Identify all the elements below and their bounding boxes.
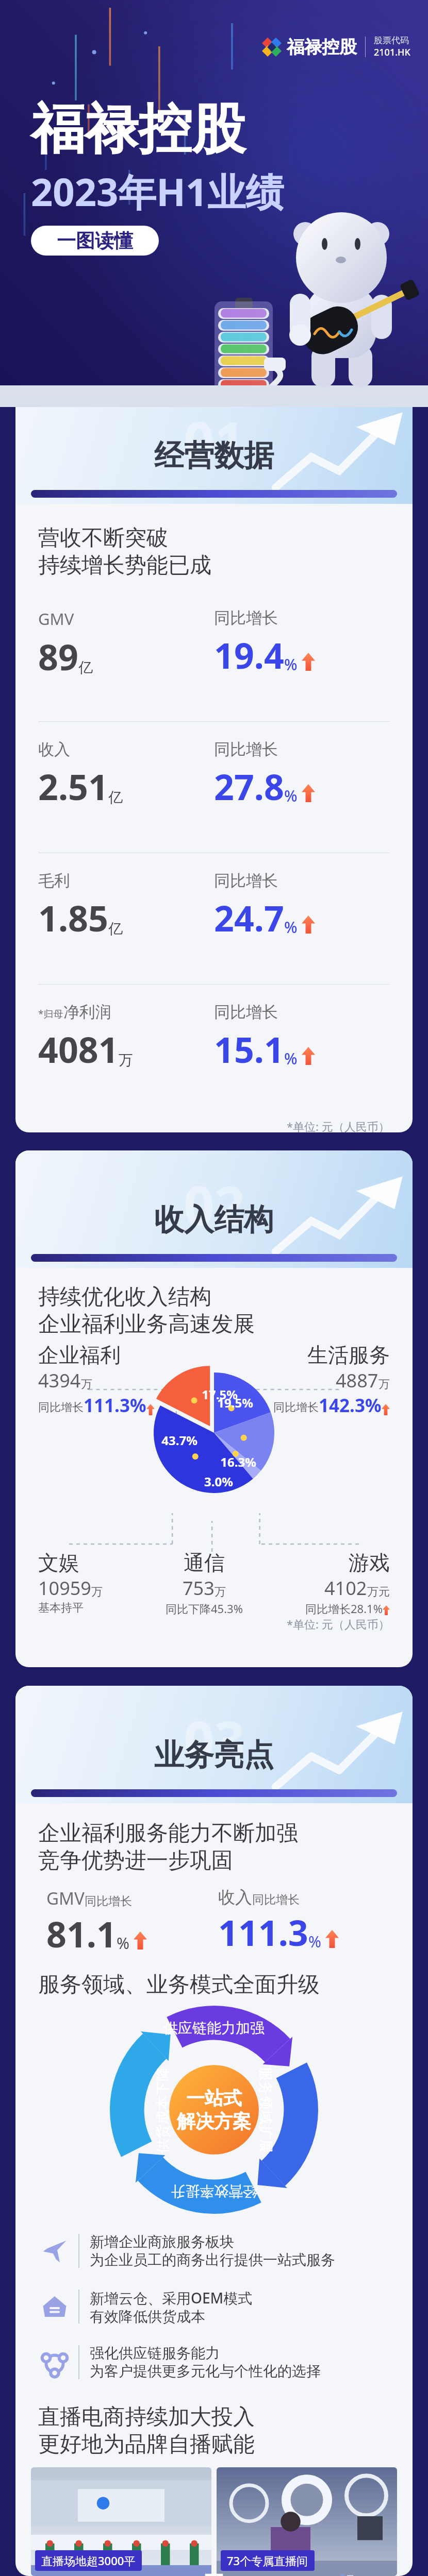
staticText: 万 xyxy=(119,1051,133,1069)
staticText: 经营效率提升 xyxy=(171,2182,257,2200)
staticText: 收入 xyxy=(38,739,70,759)
staticText: 01 xyxy=(184,404,245,477)
staticText: 企业福利服务能力不断加强 xyxy=(38,1820,298,1847)
staticText: 4081 xyxy=(38,1025,119,1073)
staticText: 同比增长 xyxy=(214,871,278,891)
staticText: 生活服务 xyxy=(307,1342,390,1368)
staticText: GMV xyxy=(46,1887,85,1910)
staticText: 2101.HK xyxy=(374,46,410,59)
staticText: 亿 xyxy=(108,788,123,806)
staticText: 新增企业商旅服务板块 xyxy=(90,2233,234,2251)
staticText: 股票代码 xyxy=(374,35,409,46)
staticText: *单位: 元（人民币） xyxy=(287,1616,390,1632)
staticText: 服务领域、业务模式全面升级 xyxy=(38,1971,320,1998)
staticText: 更好地为品牌自播赋能 xyxy=(38,2431,255,2458)
staticText: 通信 xyxy=(184,1550,225,1575)
staticText: 73个专属直播间 xyxy=(227,2553,308,2568)
staticText: 企业福利 xyxy=(38,1342,121,1368)
staticText: 10959 xyxy=(38,1575,91,1601)
staticText: 文娱 xyxy=(38,1550,79,1575)
staticText: 24.7 xyxy=(214,894,284,942)
staticText: 万 xyxy=(378,1377,390,1392)
staticText: 收入 xyxy=(218,1887,252,1908)
button[interactable]: 强化供应链服务能力 xyxy=(38,2334,390,2390)
staticText: 同比增长 xyxy=(85,1894,132,1909)
staticText: GMV xyxy=(38,608,74,630)
staticText: *单位: 元（人民币） xyxy=(287,1118,390,1132)
staticText: 同比下降45.3% xyxy=(166,1601,243,1616)
staticText: 3.0% xyxy=(200,1473,237,1490)
staticText: 竞争优势进一步巩固 xyxy=(38,1847,233,1874)
staticText: % xyxy=(284,654,298,675)
staticText: 03 xyxy=(184,1703,245,1776)
staticText: 89 xyxy=(38,633,78,681)
staticText: 收入结构 xyxy=(154,1201,274,1239)
staticText: 4102 xyxy=(324,1575,367,1601)
staticText: 业务亮点 xyxy=(154,1736,274,1774)
staticText: 福禄控股 xyxy=(287,36,357,58)
staticText: 直播场地超3000平 xyxy=(41,2553,136,2568)
staticText: 4394 xyxy=(38,1368,81,1393)
staticText: 亿 xyxy=(78,658,93,676)
staticText: 同比增长 xyxy=(273,1400,319,1415)
staticText: % xyxy=(117,1933,129,1954)
staticText: 142.3% xyxy=(319,1393,382,1418)
staticText: % xyxy=(284,785,298,806)
staticText: 111.3% xyxy=(84,1393,146,1418)
staticText: 81.1 xyxy=(46,1910,117,1958)
staticText: 为客户提供更多元化与个性化的选择 xyxy=(90,2362,321,2380)
button[interactable]: 73个专属直播间 xyxy=(217,2467,397,2576)
staticText: 持续增长势能已成 xyxy=(38,552,211,579)
staticText: 万 xyxy=(215,1585,226,1599)
staticText: *归母 xyxy=(38,1007,63,1021)
button[interactable]: 一图读懂 xyxy=(31,226,159,256)
staticText: 2.51 xyxy=(38,762,108,810)
staticText: 万 xyxy=(81,1377,92,1392)
staticText: 753 xyxy=(183,1575,215,1601)
staticText: 福禄控股 xyxy=(31,96,245,163)
staticText: 供货成本下降 xyxy=(153,2067,171,2153)
staticText: 万元 xyxy=(367,1585,390,1599)
staticText: 4887 xyxy=(336,1368,378,1393)
staticText: 游戏 xyxy=(349,1550,390,1575)
staticText: 同比增长 xyxy=(214,739,278,759)
staticText: 同比增长 xyxy=(214,608,278,628)
button[interactable]: 直播场地超3000平 xyxy=(31,2467,211,2576)
staticText: 02 xyxy=(184,1168,245,1241)
staticText: 解决方案 xyxy=(177,2110,251,2133)
staticText: 43.7% xyxy=(161,1432,198,1449)
staticText: 营收不断突破 xyxy=(38,524,168,552)
staticText: 亿 xyxy=(108,920,123,938)
staticText: 持续优化收入结构 xyxy=(38,1283,211,1311)
staticText: 毛利 xyxy=(38,871,70,891)
staticText: 1.85 xyxy=(38,894,108,942)
staticText: 净利润 xyxy=(63,1002,111,1022)
staticText: 111.3 xyxy=(218,1908,308,1956)
staticText: 新增云仓、采用OEM模式 xyxy=(90,2288,253,2308)
staticText: 基本持平 xyxy=(38,1601,84,1615)
staticText: 企业福利业务高速发展 xyxy=(38,1311,255,1338)
staticText: 2023年H1业绩 xyxy=(31,165,284,217)
staticText: 服务领域扩展 xyxy=(257,2067,275,2153)
staticText: 19.4 xyxy=(214,631,284,679)
staticText: 27.8 xyxy=(214,762,284,810)
button[interactable]: 福禄控股 股票代码 2101.HK xyxy=(262,35,410,59)
staticText: 经营数据 xyxy=(154,437,274,474)
staticText: 有效降低供货成本 xyxy=(90,2308,205,2326)
button[interactable]: 新增企业商旅服务板块 xyxy=(38,2223,390,2279)
staticText: 19.5% xyxy=(217,1394,254,1411)
staticText: 为企业员工的商务出行提供一站式服务 xyxy=(90,2251,335,2269)
staticText: % xyxy=(308,1931,321,1952)
staticText: 同比增长28.1% xyxy=(305,1601,383,1616)
staticText: 一站式 xyxy=(186,2087,242,2110)
staticText: 同比增长 xyxy=(252,1892,300,1907)
staticText: 一图读懂 xyxy=(57,229,133,253)
staticText: 同比增长 xyxy=(214,1002,278,1022)
staticText: 万 xyxy=(91,1585,103,1599)
staticText: 直播电商持续加大投入 xyxy=(38,2403,255,2431)
button[interactable]: 新增云仓、采用OEM模式 xyxy=(38,2279,390,2334)
staticText: 同比增长 xyxy=(38,1400,84,1415)
staticText: % xyxy=(284,917,298,938)
staticText: 17.5% xyxy=(201,1386,238,1403)
staticText: 15.1 xyxy=(214,1025,284,1073)
